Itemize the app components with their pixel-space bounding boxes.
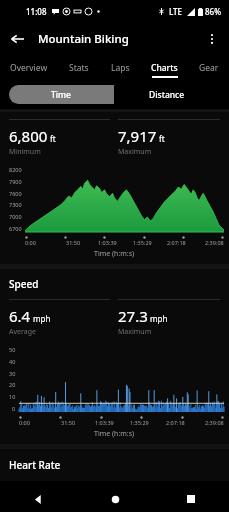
staticText: 86% <box>205 6 221 17</box>
staticText: Time (h:m:s) <box>94 429 135 439</box>
staticText: 0:00 <box>19 419 30 426</box>
staticText: Mountain Biking <box>38 31 129 47</box>
staticText: Time (h:m:s) <box>94 249 135 259</box>
staticText: 20 <box>9 381 16 388</box>
staticText: Stats <box>69 62 89 74</box>
staticText: ft <box>159 133 165 144</box>
staticText: Laps <box>111 62 130 74</box>
staticText: 2:39:08 <box>205 419 224 426</box>
button[interactable]: Distance <box>114 85 220 104</box>
staticText: 8200 <box>9 166 22 173</box>
staticText: 11:08 <box>26 6 47 17</box>
staticText: Speed <box>9 277 39 291</box>
button[interactable]: Back <box>0 22 34 56</box>
staticText: mph <box>33 313 51 324</box>
staticText: 6.4 <box>9 306 31 326</box>
staticText: 7300 <box>9 201 22 208</box>
staticText: 31:50 <box>66 239 81 246</box>
button[interactable]: Recent apps <box>153 486 229 512</box>
button[interactable]: Gear <box>188 56 229 79</box>
staticText: 7000 <box>9 213 22 220</box>
staticText: Minimum <box>9 147 41 157</box>
staticText: 27.3 <box>118 306 148 326</box>
staticText: Charts <box>151 62 178 74</box>
staticText: Distance <box>149 89 185 101</box>
staticText: Gear <box>199 62 219 74</box>
staticText: 30 <box>9 370 16 377</box>
button[interactable]: Overview <box>0 56 58 79</box>
staticText: ft <box>50 133 56 144</box>
staticText: 10 <box>9 393 16 400</box>
staticText: 2:07:18 <box>167 239 186 246</box>
staticText: 6700 <box>9 225 22 232</box>
staticText: 7,917 <box>118 126 157 146</box>
staticText: 7600 <box>9 190 22 197</box>
staticText: Average <box>9 327 36 337</box>
staticText: 2:39:08 <box>205 239 224 246</box>
staticText: 1:35:29 <box>133 239 152 246</box>
staticText: Maximum <box>118 147 152 157</box>
staticText: Heart Rate <box>9 458 61 472</box>
staticText: LTE <box>169 6 183 17</box>
staticText: mph <box>150 313 168 324</box>
staticText: 1:03:39 <box>98 239 117 246</box>
button[interactable]: Stats <box>58 56 100 79</box>
staticText: Maximum <box>118 327 152 337</box>
button[interactable]: More options <box>195 22 229 56</box>
staticText: 31:50 <box>61 419 76 426</box>
button[interactable]: Back <box>0 486 77 512</box>
staticText: 7900 <box>9 178 22 185</box>
staticText: 1:03:39 <box>95 419 114 426</box>
staticText: 0 <box>12 405 16 412</box>
staticText: 1:35:29 <box>130 419 149 426</box>
staticText: Overview <box>10 62 48 74</box>
staticText: 40 <box>9 358 16 365</box>
staticText: Time <box>51 89 72 101</box>
staticText: 0:00 <box>25 239 36 246</box>
staticText: 2:07:18 <box>166 419 185 426</box>
button[interactable]: Time <box>9 85 114 104</box>
staticText: 50 <box>9 346 16 353</box>
button[interactable]: Laps <box>100 56 141 79</box>
button[interactable]: Home <box>77 486 153 512</box>
button[interactable]: Charts <box>141 56 188 79</box>
staticText: 6,800 <box>9 126 48 146</box>
